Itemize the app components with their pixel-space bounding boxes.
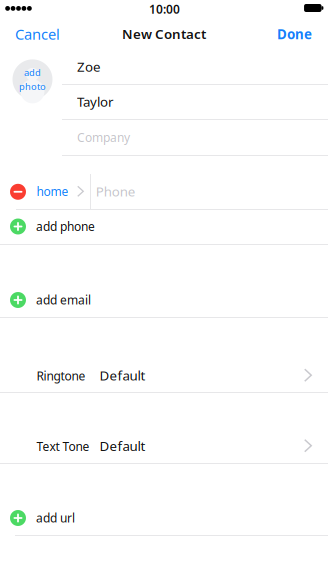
button[interactable]: Taylor: [62, 84, 328, 119]
button[interactable]: Company: [62, 120, 328, 155]
button[interactable]: add: [12, 59, 52, 99]
staticText: photo: [19, 80, 46, 93]
button[interactable]: Delete: [10, 184, 26, 200]
staticText: Done: [277, 25, 312, 43]
staticText: Zoe: [77, 58, 101, 75]
staticText: Cancel: [15, 24, 60, 44]
staticText: Default: [99, 366, 145, 384]
staticText: Text Tone: [36, 438, 89, 454]
staticText: add: [24, 66, 41, 79]
button[interactable]: add url: [0, 500, 328, 535]
staticText: 10:00: [149, 1, 180, 17]
staticText: New Contact: [122, 25, 206, 43]
staticText: Default: [99, 437, 145, 455]
button[interactable]: Text Tone: [0, 428, 328, 463]
staticText: add url: [36, 510, 75, 526]
staticText: Ringtone: [36, 368, 85, 384]
staticText: Company: [77, 129, 130, 145]
button[interactable]: Cancel: [15, 19, 85, 48]
staticText: add email: [36, 292, 91, 308]
button[interactable]: Done: [242, 19, 312, 48]
staticText: add phone: [36, 218, 95, 234]
staticText: home: [36, 183, 68, 199]
button[interactable]: Phone: [91, 174, 328, 209]
button[interactable]: home: [0, 174, 90, 209]
button[interactable]: Ringtone: [0, 358, 328, 393]
button[interactable]: add phone: [0, 209, 328, 244]
staticText: Taylor: [77, 93, 114, 110]
staticText: Phone: [96, 182, 136, 200]
button[interactable]: Zoe: [62, 49, 328, 84]
button[interactable]: add email: [0, 282, 328, 317]
